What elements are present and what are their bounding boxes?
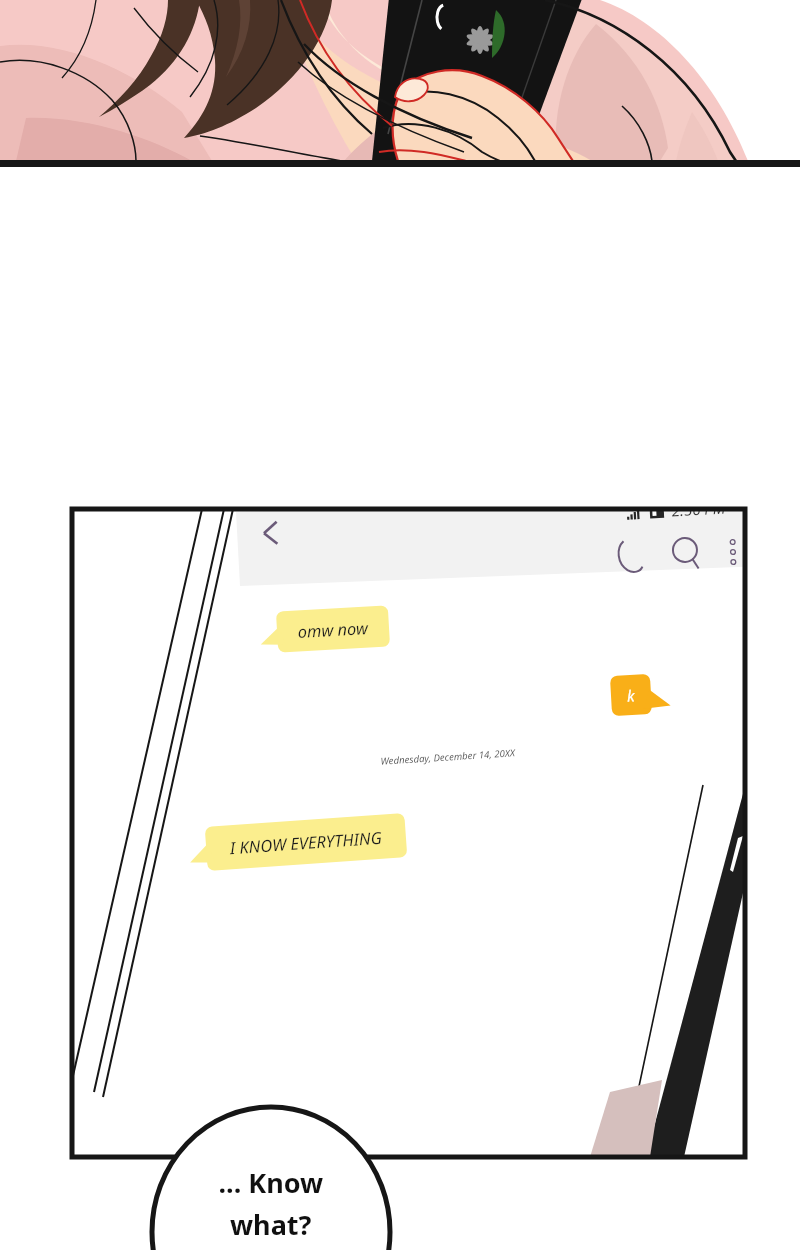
button[interactable]: Webtoon episode panel xyxy=(0,0,800,1250)
